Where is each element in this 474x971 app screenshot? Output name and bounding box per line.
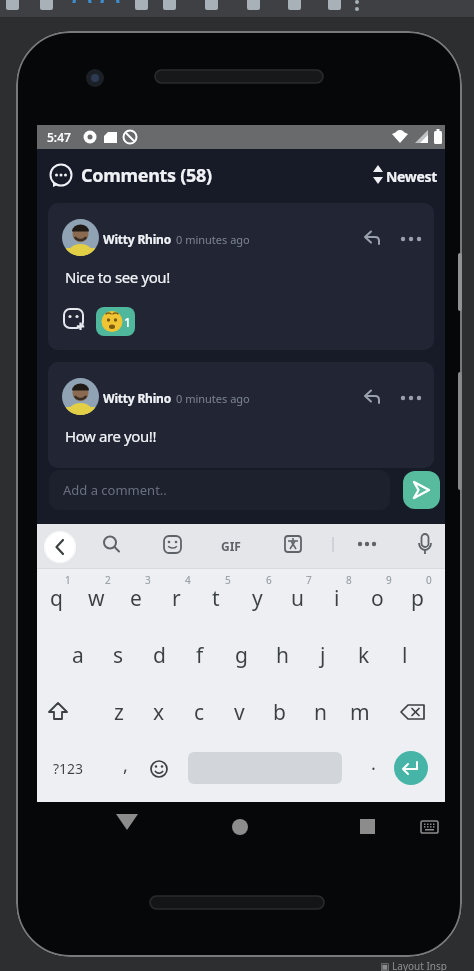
- staticText: v: [234, 698, 245, 727]
- button[interactable]: [403, 471, 440, 509]
- staticText: a: [72, 641, 84, 670]
- button[interactable]: a: [64, 635, 92, 675]
- button[interactable]: [218, 808, 262, 846]
- button[interactable]: s: [104, 635, 132, 675]
- button[interactable]: [43, 692, 73, 732]
- button[interactable]: q: [42, 578, 70, 618]
- staticText: h: [276, 641, 289, 670]
- button[interactable]: Witty Rhino: [48, 362, 434, 468]
- button[interactable]: v: [225, 692, 253, 732]
- staticText: p: [411, 584, 424, 613]
- button[interactable]: b: [265, 692, 293, 732]
- staticText: e: [130, 584, 142, 613]
- staticText: Witty Rhino: [103, 390, 171, 406]
- button[interactable]: r: [162, 578, 190, 618]
- staticText: Witty Rhino: [103, 231, 171, 247]
- button[interactable]: z: [105, 692, 133, 732]
- button[interactable]: j: [309, 635, 337, 675]
- staticText: z: [114, 698, 124, 727]
- staticText: ▣ Layout Insp: [380, 959, 447, 971]
- button[interactable]: d: [145, 635, 173, 675]
- button[interactable]: [155, 526, 191, 566]
- button[interactable]: x: [145, 692, 173, 732]
- staticText: j: [320, 641, 326, 670]
- staticText: b: [273, 698, 286, 727]
- staticText: u: [291, 584, 304, 613]
- button[interactable]: [407, 526, 443, 566]
- staticText: g: [235, 641, 248, 670]
- button[interactable]: Newest: [371, 161, 445, 191]
- staticText: 2: [105, 573, 111, 587]
- button[interactable]: [358, 386, 386, 410]
- button[interactable]: Comments (58): [37, 149, 445, 203]
- button[interactable]: [358, 227, 386, 251]
- button[interactable]: l: [391, 635, 419, 675]
- staticText: y: [252, 584, 263, 613]
- button[interactable]: [143, 749, 175, 789]
- button[interactable]: [396, 227, 426, 251]
- staticText: 4: [185, 573, 191, 587]
- staticText: 8: [346, 573, 352, 587]
- button[interactable]: n: [306, 692, 334, 732]
- staticText: t: [212, 584, 220, 613]
- staticText: i: [334, 584, 340, 613]
- button[interactable]: h: [268, 635, 296, 675]
- staticText: x: [153, 698, 165, 727]
- staticText: m: [350, 698, 370, 727]
- button[interactable]: f: [186, 635, 214, 675]
- button[interactable]: Witty Rhino: [48, 203, 434, 350]
- button[interactable]: [408, 808, 448, 846]
- staticText: ?123: [53, 759, 84, 778]
- button[interactable]: [63, 307, 87, 333]
- button[interactable]: [357, 749, 387, 789]
- staticText: 1: [65, 573, 71, 587]
- staticText: l: [402, 641, 408, 670]
- button[interactable]: m: [346, 692, 374, 732]
- button[interactable]: e: [122, 578, 150, 618]
- staticText: 0 minutes ago: [176, 232, 250, 247]
- button[interactable]: Add a comment..: [49, 470, 390, 510]
- button[interactable]: [44, 531, 76, 563]
- button[interactable]: [104, 808, 148, 846]
- staticText: f: [196, 641, 204, 670]
- button[interactable]: t: [202, 578, 230, 618]
- button[interactable]: i: [323, 578, 351, 618]
- button[interactable]: c: [185, 692, 213, 732]
- button[interactable]: [349, 526, 385, 566]
- button[interactable]: k: [350, 635, 378, 675]
- staticText: o: [371, 584, 384, 613]
- staticText: n: [314, 698, 327, 727]
- staticText: 6: [266, 573, 272, 587]
- button[interactable]: [395, 692, 431, 732]
- button[interactable]: [214, 526, 250, 566]
- button[interactable]: g: [227, 635, 255, 675]
- button[interactable]: w: [82, 578, 110, 618]
- button[interactable]: u: [283, 578, 311, 618]
- staticText: 1: [124, 314, 131, 330]
- button[interactable]: y: [243, 578, 271, 618]
- staticText: Newest: [386, 167, 438, 186]
- staticText: c: [194, 698, 205, 727]
- staticText: ,: [123, 753, 128, 778]
- staticText: 5:47: [47, 129, 71, 145]
- staticText: Add a comment..: [63, 481, 167, 499]
- button[interactable]: [394, 751, 428, 785]
- button[interactable]: [43, 749, 87, 789]
- staticText: How are you!!: [65, 426, 157, 446]
- staticText: 3: [145, 573, 151, 587]
- button[interactable]: p: [403, 578, 431, 618]
- button[interactable]: 1: [96, 307, 135, 336]
- button[interactable]: [94, 526, 130, 566]
- button[interactable]: [275, 526, 311, 566]
- staticText: Nice to see you!: [65, 267, 170, 287]
- staticText: 0 minutes ago: [176, 391, 250, 406]
- button[interactable]: [396, 386, 426, 410]
- button[interactable]: [113, 749, 143, 789]
- staticText: 7: [306, 573, 312, 587]
- button[interactable]: o: [363, 578, 391, 618]
- staticText: s: [113, 641, 124, 670]
- staticText: 9: [386, 573, 392, 587]
- button[interactable]: [344, 808, 388, 846]
- staticText: 5: [225, 573, 231, 587]
